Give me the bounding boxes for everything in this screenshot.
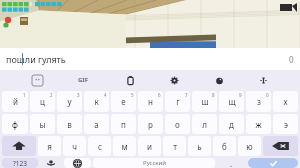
staticText: ц: [40, 96, 45, 107]
staticText: ж: [255, 119, 262, 130]
staticText: 0: [266, 92, 269, 98]
staticText: ф: [12, 119, 18, 130]
staticText: ь: [197, 141, 202, 152]
button[interactable]: л: [192, 114, 217, 134]
button[interactable]: ю: [238, 136, 261, 156]
button[interactable]: ы: [30, 114, 55, 134]
staticText: н: [148, 96, 153, 107]
button[interactable]: ц: [30, 91, 55, 112]
button[interactable]: п: [111, 114, 136, 134]
button[interactable]: я: [38, 136, 61, 156]
staticText: 9: [239, 92, 242, 98]
button[interactable]: в: [57, 114, 82, 134]
button[interactable]: ф: [2, 114, 28, 134]
button[interactable]: Voice input: [40, 158, 62, 168]
button[interactable]: й: [2, 91, 28, 112]
button[interactable]: к: [84, 91, 109, 112]
button[interactable]: Enter: [248, 158, 298, 168]
staticText: ?123: [13, 159, 27, 168]
button[interactable]: ч: [63, 136, 86, 156]
staticText: 1: [23, 92, 26, 98]
staticText: щ: [228, 96, 236, 107]
staticText: 5: [131, 92, 134, 98]
button[interactable]: з: [246, 91, 271, 112]
staticText: я: [47, 141, 52, 152]
staticText: г: [176, 96, 180, 107]
button[interactable]: н: [138, 91, 163, 112]
button[interactable]: ж: [246, 114, 271, 134]
staticText: р: [148, 119, 153, 130]
staticText: е: [121, 96, 126, 107]
button[interactable]: а: [84, 114, 109, 134]
button[interactable]: Shift: [2, 136, 36, 156]
staticText: х: [283, 96, 288, 107]
button[interactable]: GIF: [73, 72, 93, 88]
staticText: а: [94, 119, 99, 130]
staticText: к: [94, 96, 99, 107]
staticText: и: [147, 141, 152, 152]
button[interactable]: г: [165, 91, 190, 112]
button[interactable]: ь: [188, 136, 211, 156]
staticText: д: [229, 119, 234, 130]
staticText: л: [202, 119, 207, 130]
button[interactable]: с: [88, 136, 111, 156]
staticText: м: [121, 141, 128, 152]
staticText: 3: [77, 92, 80, 98]
button[interactable]: щ: [219, 91, 244, 112]
staticText: 0: [289, 54, 294, 65]
button[interactable]: пошли гулять: [0, 48, 300, 70]
button[interactable]: э: [273, 114, 298, 134]
staticText: 4: [104, 92, 107, 98]
staticText: б: [222, 141, 227, 152]
staticText: в: [67, 119, 72, 130]
button[interactable]: Stickers: [29, 72, 45, 88]
staticText: т: [173, 141, 177, 152]
button[interactable]: ?123: [2, 158, 38, 168]
staticText: ч: [72, 141, 77, 152]
staticText: ю: [246, 141, 253, 152]
button[interactable]: б: [213, 136, 236, 156]
button[interactable]: Русский: [93, 158, 215, 168]
staticText: 8: [212, 92, 215, 98]
button[interactable]: д: [219, 114, 244, 134]
button[interactable]: Settings: [166, 72, 182, 88]
staticText: пошли гулять: [6, 53, 66, 65]
staticText: у: [67, 96, 72, 107]
button[interactable]: ш: [192, 91, 217, 112]
staticText: с: [98, 141, 102, 152]
button[interactable]: .: [217, 158, 246, 168]
button[interactable]: Text editing: [255, 72, 271, 88]
staticText: ы: [39, 119, 46, 130]
staticText: й: [13, 96, 18, 107]
staticText: э: [284, 119, 288, 130]
button[interactable]: Backspace: [263, 136, 298, 156]
staticText: GIF: [78, 76, 88, 84]
button[interactable]: Clipboard: [122, 72, 138, 88]
button[interactable]: о: [165, 114, 190, 134]
button[interactable]: у: [57, 91, 82, 112]
staticText: .: [230, 158, 233, 168]
staticText: 2: [50, 92, 53, 98]
staticText: 6: [158, 92, 161, 98]
staticText: п: [121, 119, 126, 130]
button[interactable]: м: [113, 136, 136, 156]
staticText: 7: [185, 92, 188, 98]
button[interactable]: Themes: [211, 72, 227, 88]
staticText: ш: [201, 96, 209, 107]
button[interactable]: е: [111, 91, 136, 112]
staticText: о: [175, 119, 180, 130]
button[interactable]: Change language: [64, 158, 91, 168]
staticText: Русский: [143, 159, 166, 167]
button[interactable]: и: [138, 136, 161, 156]
staticText: з: [257, 96, 261, 107]
button[interactable]: т: [163, 136, 186, 156]
button[interactable]: х: [273, 91, 298, 112]
button[interactable]: р: [138, 114, 163, 134]
